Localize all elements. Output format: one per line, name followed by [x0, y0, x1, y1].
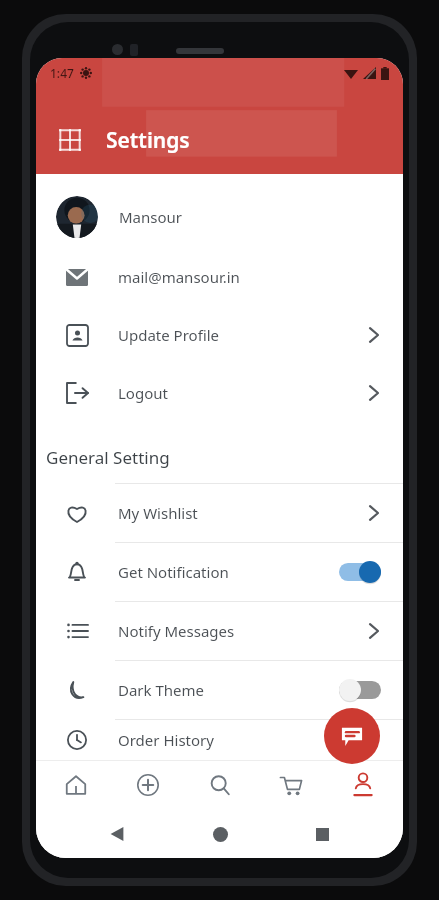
button[interactable]: Cart: [259, 760, 323, 810]
button[interactable]: Menu: [48, 118, 92, 162]
button[interactable]: Recents: [300, 812, 344, 856]
button[interactable]: Logout: [36, 364, 403, 422]
button[interactable]: Search: [188, 760, 252, 810]
button[interactable]: Off: [339, 679, 381, 701]
staticText: Logout: [118, 383, 168, 403]
button[interactable]: Get Notification: [36, 543, 403, 601]
button[interactable]: Chat: [324, 708, 380, 764]
button[interactable]: Add: [116, 760, 180, 810]
button[interactable]: My Wishlist: [36, 484, 403, 542]
button[interactable]: Order History: [36, 720, 403, 760]
staticText: 1:47: [50, 65, 74, 81]
button[interactable]: On: [339, 561, 381, 583]
staticText: Notify Messages: [118, 621, 235, 641]
button[interactable]: Home: [44, 760, 108, 810]
button[interactable]: Profile: [331, 760, 395, 810]
button[interactable]: Home: [198, 812, 242, 856]
staticText: Mansour: [119, 207, 183, 227]
staticText: Update Profile: [118, 325, 220, 345]
staticText: General Setting: [46, 446, 170, 469]
staticText: Get Notification: [118, 562, 229, 582]
staticText: My Wishlist: [118, 503, 198, 523]
button[interactable]: Back: [95, 812, 139, 856]
button[interactable]: Notify Messages: [36, 602, 403, 660]
button[interactable]: Dark Theme: [36, 661, 403, 719]
button[interactable]: Update Profile: [36, 306, 403, 364]
staticText: mail@mansour.in: [118, 267, 240, 287]
button[interactable]: Mansour: [36, 186, 403, 248]
staticText: Order History: [118, 730, 214, 750]
staticText: Dark Theme: [118, 680, 205, 700]
staticText: Settings: [106, 126, 190, 155]
button[interactable]: mail@mansour.in: [36, 248, 403, 306]
